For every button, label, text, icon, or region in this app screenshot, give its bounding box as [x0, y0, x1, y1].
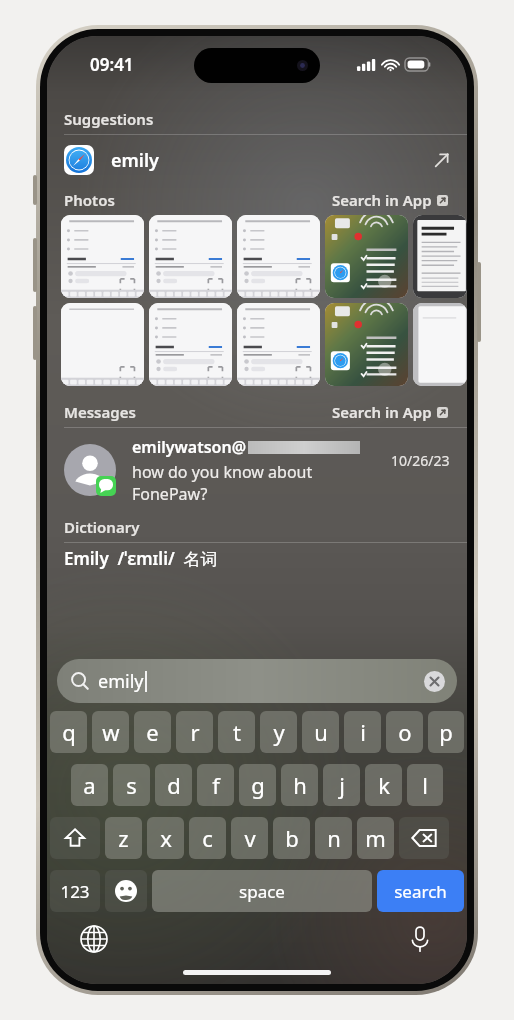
staticText: space [239, 880, 285, 903]
button[interactable] [61, 303, 144, 386]
button[interactable]: a [71, 764, 108, 806]
staticText: how do you know about FonePaw? [132, 461, 383, 505]
button[interactable]: f [197, 764, 234, 806]
button[interactable]: r [176, 711, 213, 753]
button[interactable]: w [92, 711, 129, 753]
button[interactable]: Backspace [399, 817, 449, 859]
button[interactable] [237, 215, 320, 298]
button[interactable]: q [50, 711, 87, 753]
button[interactable]: m [357, 817, 394, 859]
button[interactable] [149, 303, 232, 386]
staticText: emily [111, 148, 159, 173]
button[interactable]: z [105, 817, 142, 859]
staticText: i [360, 717, 366, 747]
staticText: z [118, 823, 129, 853]
button[interactable]: n [315, 817, 352, 859]
button[interactable] [237, 303, 320, 386]
staticText: f [212, 770, 220, 800]
button[interactable]: emily [47, 135, 467, 185]
staticText: b [285, 823, 299, 853]
staticText: 10/26/23 [391, 451, 450, 470]
button[interactable] [325, 215, 408, 298]
button[interactable]: search [377, 870, 464, 912]
button[interactable]: c [189, 817, 226, 859]
staticText: a [83, 770, 96, 800]
button[interactable] [413, 303, 467, 386]
staticText: v [244, 823, 256, 853]
button[interactable] [61, 215, 144, 298]
button[interactable]: g [239, 764, 276, 806]
button[interactable] [149, 215, 232, 298]
staticText: l [422, 770, 428, 800]
button[interactable]: e [134, 711, 171, 753]
staticText: m [365, 823, 386, 853]
button[interactable]: Switch keyboard language [77, 922, 111, 956]
button[interactable]: Emoji [105, 870, 147, 912]
staticText: Search in App [332, 402, 432, 422]
button[interactable]: d [155, 764, 192, 806]
button[interactable]: u [302, 711, 339, 753]
button[interactable]: k [365, 764, 402, 806]
button[interactable]: o [386, 711, 423, 753]
staticText: q [62, 717, 76, 747]
button[interactable] [413, 215, 467, 298]
staticText: k [378, 770, 390, 800]
button[interactable]: b [273, 817, 310, 859]
staticText: g [251, 770, 265, 800]
staticText: search [394, 880, 447, 903]
button[interactable]: p [428, 711, 464, 753]
staticText: 09:41 [90, 53, 134, 76]
button[interactable]: y [260, 711, 297, 753]
staticText: Search in App [332, 190, 432, 210]
button[interactable]: Search in App [330, 400, 450, 424]
button[interactable]: space [152, 870, 372, 912]
button[interactable]: Clear search [424, 671, 445, 692]
button[interactable]: j [323, 764, 360, 806]
button[interactable]: t [218, 711, 255, 753]
staticText: n [327, 823, 341, 853]
staticText: h [293, 770, 307, 800]
staticText: c [202, 823, 213, 853]
staticText: j [339, 770, 345, 800]
staticText: r [190, 717, 200, 747]
staticText: emilywatson@ [132, 436, 247, 458]
staticText: emily [98, 669, 144, 694]
staticText: s [126, 770, 137, 800]
button[interactable]: Shift [50, 817, 100, 859]
staticText: p [439, 717, 453, 747]
staticText: w [102, 717, 120, 747]
staticText: Photos [64, 190, 115, 210]
button[interactable]: h [281, 764, 318, 806]
button[interactable]: v [231, 817, 268, 859]
staticText: Messages [64, 402, 136, 422]
staticText: u [314, 717, 328, 747]
staticText: Suggestions [64, 109, 154, 129]
staticText: t [233, 717, 241, 747]
button[interactable]: i [344, 711, 381, 753]
button[interactable]: 123 [50, 870, 100, 912]
staticText: y [273, 717, 285, 747]
button[interactable]: s [113, 764, 150, 806]
button[interactable]: Dictation [403, 922, 437, 956]
staticText: x [160, 823, 172, 853]
button[interactable]: x [147, 817, 184, 859]
staticText: 123 [60, 880, 90, 903]
staticText: e [146, 717, 159, 747]
staticText: o [398, 717, 412, 747]
button[interactable]: l [407, 764, 443, 806]
button[interactable]: emily [57, 659, 457, 703]
button[interactable]: emilywatson@ [47, 428, 467, 512]
staticText: Dictionary [64, 517, 140, 537]
other: Open suggestion [433, 152, 450, 169]
staticText: Emily /ˈɛmɪli/ 名词 [64, 547, 218, 570]
button[interactable]: Search in App [330, 188, 450, 212]
staticText: d [167, 770, 181, 800]
button[interactable] [325, 303, 408, 386]
